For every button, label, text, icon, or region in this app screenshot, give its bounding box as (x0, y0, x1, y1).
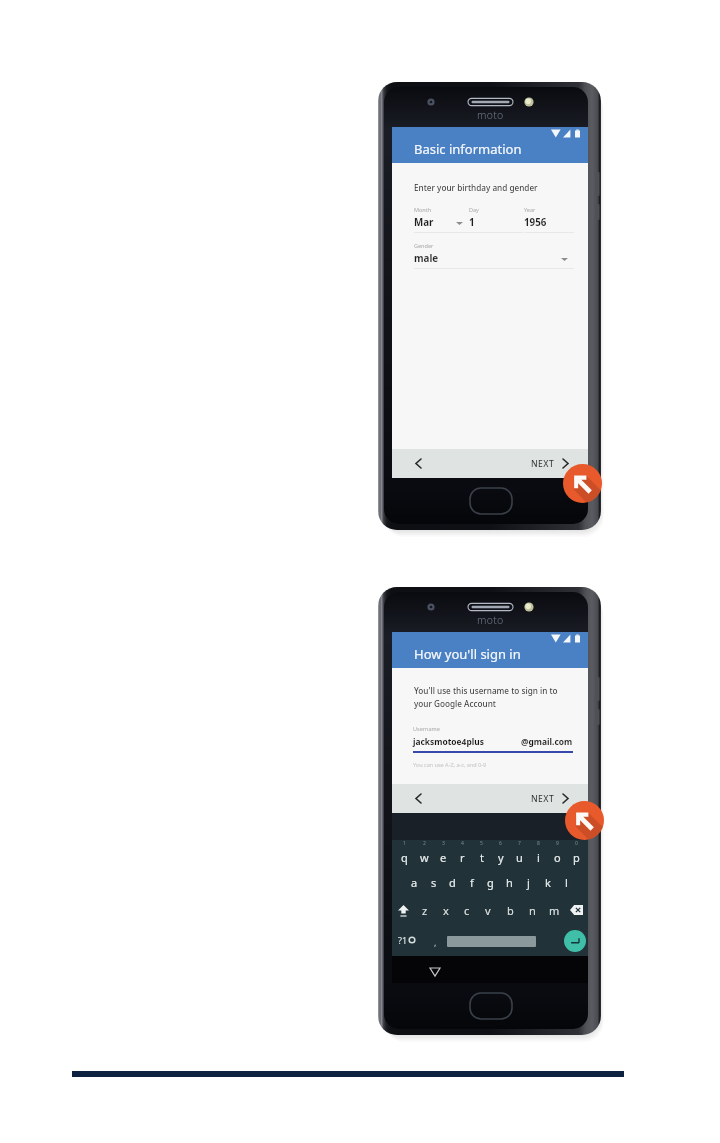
staticText: h (506, 875, 513, 890)
button[interactable]: a (404, 868, 424, 896)
staticText: i (537, 850, 540, 865)
staticText: ?1 (398, 934, 408, 946)
staticText: p (573, 850, 580, 865)
button[interactable]: Tap here (565, 801, 604, 840)
staticText: Gender (414, 242, 434, 249)
staticText: u (516, 850, 523, 865)
staticText: Username (413, 725, 440, 732)
staticText: your Google Account (414, 698, 496, 709)
button[interactable]: u (510, 840, 529, 868)
staticText: Basic information (414, 140, 522, 158)
staticText: moto (477, 613, 504, 627)
staticText: , (434, 936, 437, 948)
button[interactable]: m (543, 896, 565, 924)
staticText: s (431, 875, 437, 890)
staticText: q (401, 850, 408, 865)
staticText: l (565, 875, 568, 890)
button[interactable]: Month (414, 206, 469, 233)
staticText: 6 (499, 840, 502, 847)
other: Back (430, 968, 440, 976)
staticText: You'll use this username to sign in to (414, 685, 558, 696)
button[interactable]: d (443, 868, 462, 896)
button[interactable]: j (519, 868, 538, 896)
button[interactable]: w (414, 840, 434, 868)
staticText: How you'll sign in (414, 645, 521, 663)
staticText: @gmail.com (521, 736, 573, 747)
staticText: m (549, 903, 560, 918)
staticText: g (487, 875, 494, 890)
button[interactable]: f (462, 868, 481, 896)
button[interactable]: h (500, 868, 519, 896)
staticText: t (480, 850, 484, 865)
button[interactable]: b (499, 896, 521, 924)
staticText: d (449, 875, 456, 890)
staticText: NEXT (531, 458, 555, 470)
staticText: 3 (442, 840, 445, 847)
button[interactable]: Enter (564, 930, 586, 952)
button[interactable]: Symbols (398, 934, 416, 946)
button[interactable]: Day (469, 206, 523, 233)
staticText: NEXT (531, 793, 555, 805)
staticText: Enter your birthday and gender (414, 182, 538, 193)
button[interactable]: p (567, 840, 586, 868)
staticText: 1 (403, 840, 406, 847)
staticText: y (498, 850, 504, 865)
staticText: r (460, 850, 465, 865)
staticText: Month (414, 206, 432, 213)
staticText: o (554, 850, 561, 865)
staticText: z (422, 903, 428, 918)
button[interactable]: q (394, 840, 414, 868)
button[interactable]: Shift (392, 896, 414, 924)
button[interactable]: Backspace (565, 896, 588, 924)
staticText: k (545, 875, 551, 890)
staticText: jacksmotoe4plus (413, 736, 484, 747)
staticText: f (470, 875, 474, 890)
button[interactable]: i (529, 840, 548, 868)
staticText: 4 (461, 840, 464, 847)
staticText: x (443, 903, 449, 918)
button[interactable]: Back (392, 784, 438, 813)
button[interactable]: s (424, 868, 443, 896)
button[interactable]: Tap here (563, 464, 602, 503)
staticText: j (527, 875, 530, 890)
staticText: c (464, 903, 470, 918)
button[interactable]: l (557, 868, 576, 896)
staticText: 9 (556, 840, 559, 847)
staticText: 1 (469, 216, 475, 229)
staticText: b (507, 903, 514, 918)
button[interactable]: c (456, 896, 477, 924)
button[interactable]: e (434, 840, 453, 868)
staticText: Year (524, 206, 536, 213)
button[interactable]: n (521, 896, 543, 924)
button[interactable]: x (435, 896, 456, 924)
staticText: 2 (423, 840, 426, 847)
button[interactable]: g (481, 868, 500, 896)
button[interactable]: Back (392, 449, 438, 478)
button[interactable]: o (548, 840, 567, 868)
staticText: 7 (518, 840, 521, 847)
button[interactable]: NEXT (392, 449, 588, 478)
staticText: a (411, 875, 418, 890)
button[interactable]: NEXT (392, 784, 588, 813)
button[interactable]: k (538, 868, 557, 896)
button[interactable]: t (472, 840, 491, 868)
button[interactable]: Gender (414, 242, 574, 269)
staticText: moto (477, 108, 504, 122)
staticText: male (414, 252, 439, 265)
staticText: 5 (480, 840, 483, 847)
button[interactable]: z (414, 896, 435, 924)
staticText: 0 (575, 840, 578, 847)
staticText: Mar (414, 216, 434, 229)
button[interactable]: r (453, 840, 472, 868)
staticText: e (440, 850, 447, 865)
staticText: w (420, 850, 429, 865)
button[interactable]: Year (524, 206, 574, 233)
staticText: v (485, 903, 491, 918)
button[interactable]: y (491, 840, 510, 868)
staticText: Day (469, 206, 479, 213)
staticText: You can use A-Z, a-z, and 0-9 (413, 761, 487, 768)
button[interactable]: v (477, 896, 499, 924)
staticText: 8 (537, 840, 540, 847)
staticText: 1956 (524, 216, 547, 229)
